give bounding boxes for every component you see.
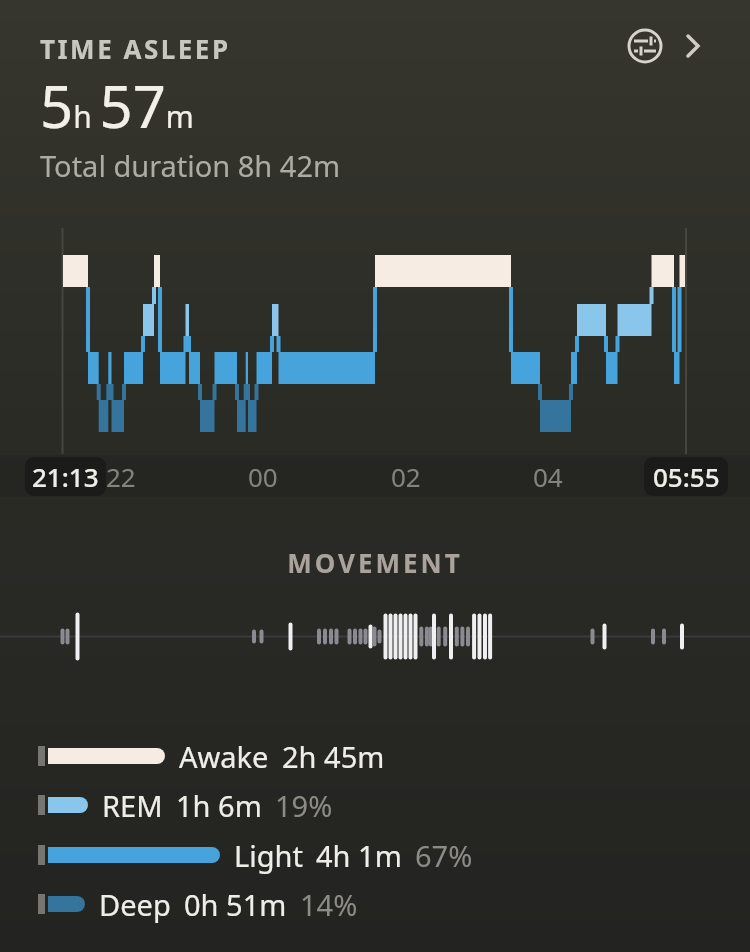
staticText: TIME ASLEEP [40,31,231,66]
button[interactable]: Deep [38,885,358,923]
staticText: Total duration 8h 42m [40,146,341,185]
staticText: MOVEMENT [287,545,463,580]
staticText: 02 [391,459,421,494]
button[interactable] [625,26,665,66]
button[interactable]: REM [38,786,333,824]
staticText: 4h 1m [316,836,402,874]
staticText: 00 [248,459,278,494]
staticText: Awake [179,737,269,775]
staticText: 67% [415,836,473,874]
staticText: 19% [275,786,333,824]
button[interactable]: 05:55 [644,457,728,496]
staticText: 05:55 [653,459,720,494]
button[interactable]: 21:13 [25,457,106,496]
staticText: 22 [106,459,136,494]
staticText: Deep [99,885,171,923]
button[interactable]: Light [38,836,473,874]
staticText: 2h 45m [282,737,385,775]
staticText: 14% [300,885,358,923]
staticText: 1h 6m [176,786,262,824]
staticText: 21:13 [32,459,99,494]
staticText: Light [234,836,303,874]
staticText: 0h 51m [184,885,287,923]
button[interactable] [678,26,718,66]
button[interactable]: Awake [38,737,385,775]
staticText: 5h 57m [40,66,194,145]
staticText: REM [102,786,163,824]
staticText: 04 [533,459,563,494]
